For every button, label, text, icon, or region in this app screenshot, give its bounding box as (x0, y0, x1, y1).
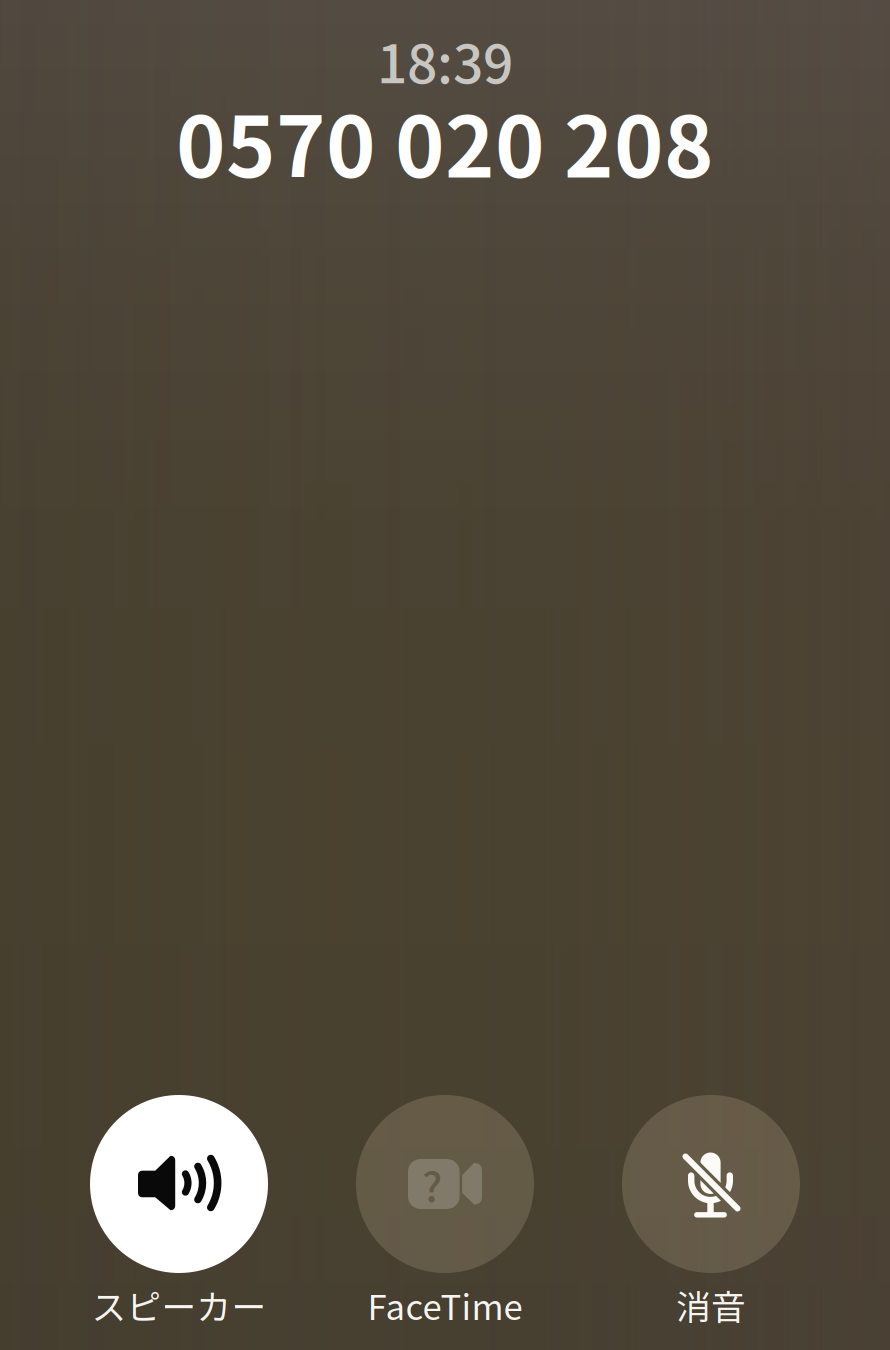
staticText: 18:39 (377, 21, 513, 99)
staticText: スピーカー (91, 1280, 266, 1330)
staticText: 0570 020 208 (176, 80, 714, 202)
button[interactable]: スピーカー (46, 1095, 312, 1322)
staticText: ? (422, 1154, 442, 1214)
button[interactable]: ? (312, 1095, 578, 1322)
staticText: 消音 (676, 1280, 746, 1330)
staticText: FaceTime (367, 1280, 522, 1330)
button[interactable]: 消音 (578, 1095, 844, 1322)
